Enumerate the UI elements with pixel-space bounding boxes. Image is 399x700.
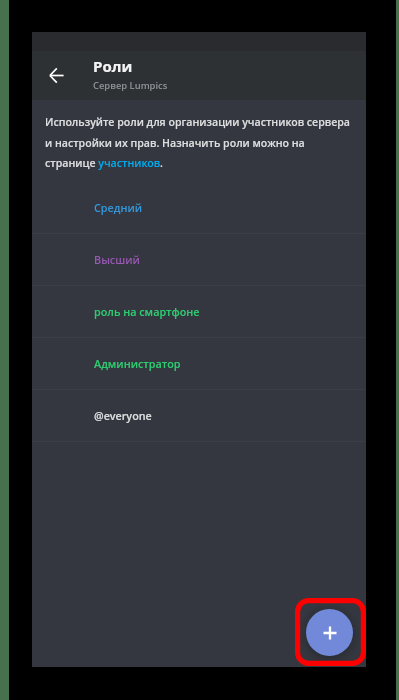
staticText: @everyone — [94, 408, 152, 423]
button[interactable]: роль на смартфоне — [32, 286, 366, 338]
staticText: Роли — [93, 56, 133, 76]
staticText: Высший — [94, 252, 140, 267]
button[interactable]: Высший — [32, 234, 366, 286]
button[interactable]: Администратор — [32, 338, 366, 390]
button[interactable]: Средний — [32, 182, 366, 234]
staticText: роль на смартфоне — [94, 304, 200, 319]
button[interactable]: Back — [36, 51, 76, 100]
staticText: Средний — [94, 200, 143, 215]
button[interactable]: Add role — [306, 609, 353, 656]
staticText: Сервер Lumpics — [93, 79, 168, 92]
button[interactable]: @everyone — [32, 390, 366, 442]
staticText: Используйте роли для организации участни… — [45, 115, 353, 170]
staticText: Администратор — [94, 356, 181, 371]
